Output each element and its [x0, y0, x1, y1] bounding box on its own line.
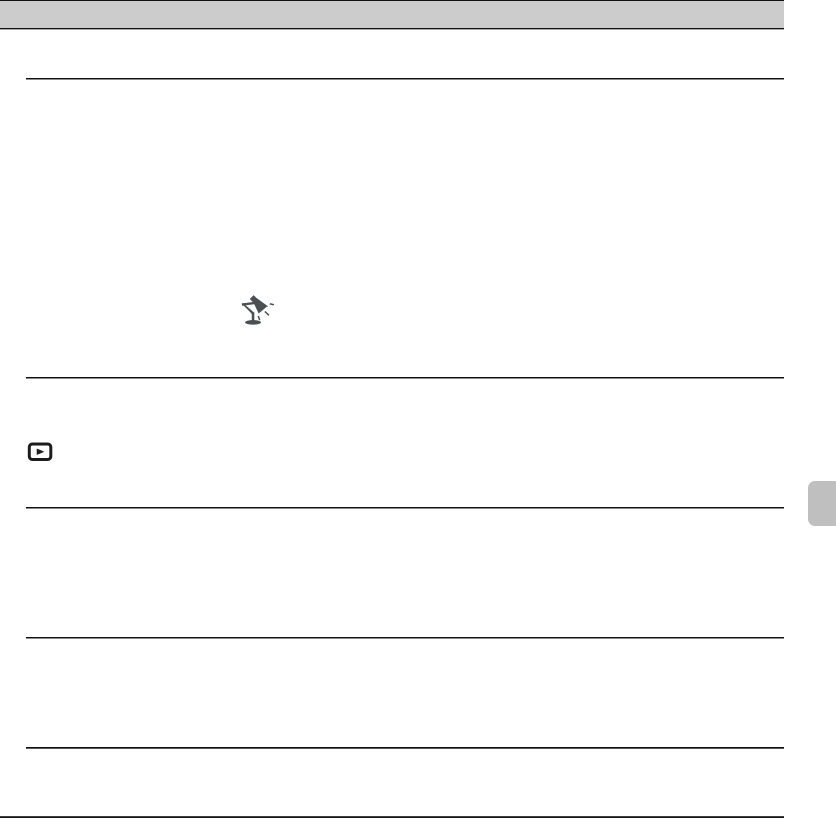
button[interactable] — [0, 379, 784, 507]
button[interactable] — [0, 80, 784, 377]
